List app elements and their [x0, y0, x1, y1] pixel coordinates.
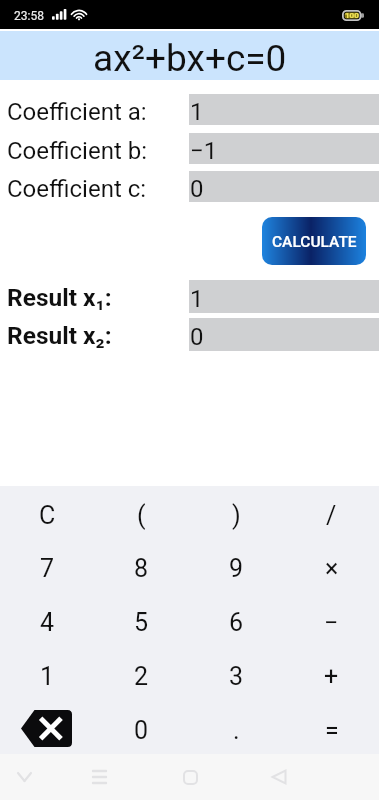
- button[interactable]: Hide keyboard: [6, 759, 42, 795]
- staticText: Result x₂:: [7, 321, 112, 350]
- staticText: ): [232, 501, 241, 530]
- staticText: ×: [325, 554, 339, 583]
- staticText: Coefficient c:: [7, 175, 147, 203]
- button[interactable]: Home: [172, 759, 208, 795]
- staticText: CALCULATE: [272, 233, 357, 251]
- staticText: 9: [229, 554, 244, 583]
- button[interactable]: −: [284, 592, 379, 646]
- staticText: Coefficient a:: [7, 98, 147, 126]
- button[interactable]: (: [94, 486, 189, 539]
- button[interactable]: Recent apps: [81, 759, 117, 795]
- staticText: 5: [134, 608, 149, 637]
- button[interactable]: 1: [189, 94, 379, 125]
- staticText: +: [324, 662, 339, 691]
- button[interactable]: 6: [189, 592, 284, 646]
- button[interactable]: CALCULATE: [262, 217, 366, 265]
- button[interactable]: 2: [94, 646, 189, 700]
- staticText: 23:58: [14, 9, 44, 23]
- button[interactable]: 4: [0, 592, 94, 646]
- staticText: /: [326, 501, 337, 530]
- staticText: C: [39, 501, 56, 530]
- staticText: 8: [134, 554, 149, 583]
- staticText: 7: [40, 554, 55, 583]
- staticText: 1: [190, 98, 204, 126]
- button[interactable]: 5: [94, 592, 189, 646]
- staticText: 0: [190, 323, 204, 351]
- staticText: ax²+bx+c=0: [93, 37, 287, 80]
- button[interactable]: 9: [189, 539, 284, 592]
- button[interactable]: 7: [0, 539, 94, 592]
- button[interactable]: 0: [189, 171, 379, 202]
- button[interactable]: 0: [94, 700, 189, 754]
- button[interactable]: −1: [189, 133, 379, 164]
- button[interactable]: Backspace: [0, 700, 94, 754]
- staticText: 100: [345, 11, 359, 20]
- staticText: .: [233, 716, 240, 745]
- other: Backspace: [21, 710, 72, 747]
- staticText: Coefficient b:: [7, 137, 147, 165]
- button[interactable]: /: [284, 486, 379, 539]
- staticText: 6: [229, 608, 244, 637]
- staticText: 1: [40, 662, 55, 691]
- button[interactable]: 8: [94, 539, 189, 592]
- staticText: Result x₁:: [7, 283, 112, 312]
- button[interactable]: =: [284, 700, 379, 754]
- staticText: 0: [190, 175, 204, 203]
- staticText: 3: [229, 662, 244, 691]
- staticText: −: [324, 608, 339, 637]
- button[interactable]: C: [0, 486, 94, 539]
- button[interactable]: ): [189, 486, 284, 539]
- staticText: (: [137, 501, 146, 530]
- staticText: 0: [134, 716, 149, 745]
- button[interactable]: ×: [284, 539, 379, 592]
- staticText: 4: [40, 608, 55, 637]
- button[interactable]: +: [284, 646, 379, 700]
- button[interactable]: 1: [0, 646, 94, 700]
- button[interactable]: 3: [189, 646, 284, 700]
- button[interactable]: Back: [261, 759, 297, 795]
- staticText: 2: [134, 662, 149, 691]
- staticText: 1: [190, 285, 204, 313]
- button[interactable]: .: [189, 700, 284, 754]
- staticText: =: [325, 716, 339, 745]
- staticText: −1: [190, 137, 218, 165]
